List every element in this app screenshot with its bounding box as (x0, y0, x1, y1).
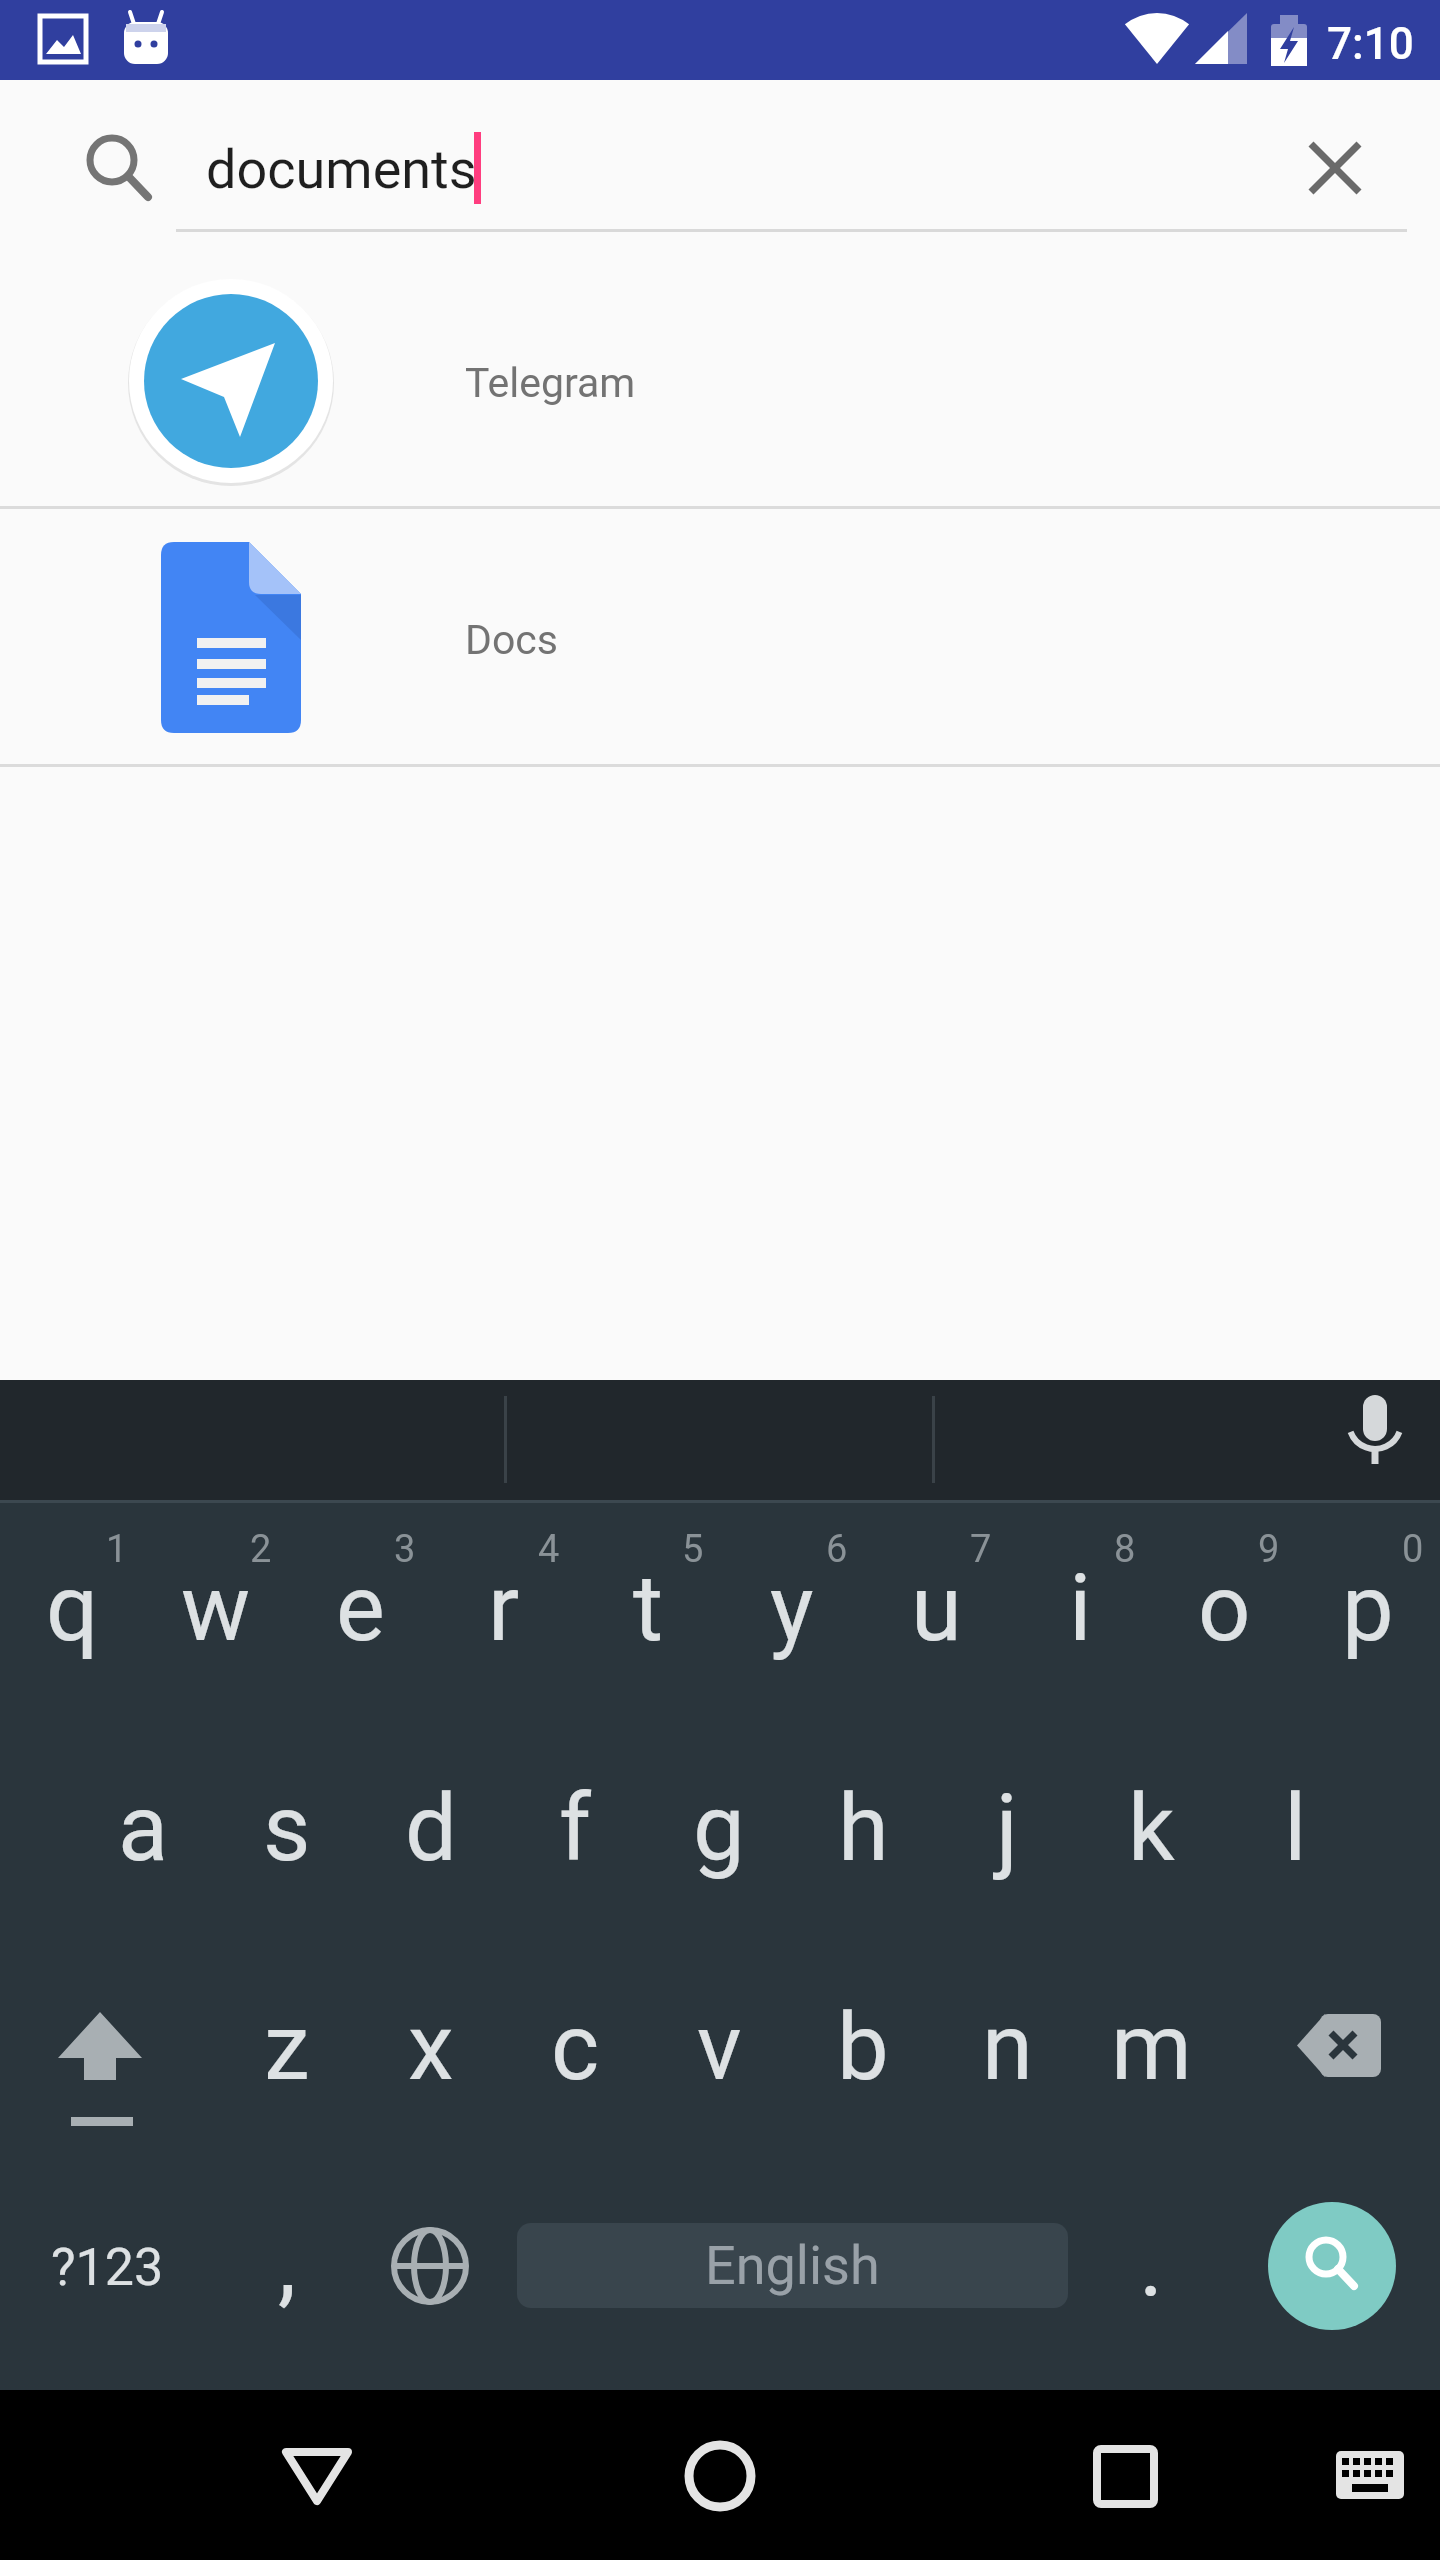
button[interactable] (1310, 2396, 1430, 2556)
staticText: c (551, 1994, 600, 2102)
button[interactable] (40, 2159, 180, 2375)
button[interactable] (640, 2396, 800, 2556)
staticText: q (46, 1555, 99, 1663)
staticText: w (181, 1555, 251, 1663)
staticText: g (693, 1775, 745, 1883)
staticText: documents (206, 138, 477, 201)
staticText: z (264, 1994, 310, 2102)
staticText: 4 (538, 1527, 560, 1572)
button[interactable]: r (432, 1501, 576, 1717)
button[interactable]: k (1079, 1721, 1223, 1937)
button[interactable] (358, 2159, 502, 2375)
button[interactable]: x (359, 1940, 503, 2156)
button[interactable]: y (720, 1501, 864, 1717)
staticText: s (263, 1775, 311, 1883)
staticText: l (1284, 1775, 1307, 1883)
button[interactable]: f (503, 1721, 647, 1937)
staticText: 7 (970, 1527, 992, 1572)
button[interactable] (1260, 1940, 1420, 2156)
button[interactable]: c (503, 1940, 647, 2156)
button[interactable]: u (864, 1501, 1008, 1717)
button[interactable]: i (1008, 1501, 1152, 1717)
staticText: 7:10 (1327, 18, 1414, 70)
staticText: e (336, 1555, 385, 1663)
button[interactable]: t (576, 1501, 720, 1717)
button[interactable]: v (647, 1940, 791, 2156)
staticText: , (278, 2210, 297, 2318)
staticText: 5 (682, 1527, 704, 1572)
staticText: English (705, 2234, 880, 2297)
button[interactable]: h (791, 1721, 935, 1937)
staticText: b (837, 1994, 889, 2102)
button[interactable]: o (1152, 1501, 1296, 1717)
staticText: h (838, 1775, 889, 1883)
button[interactable]: s (215, 1721, 359, 1937)
staticText: u (911, 1555, 962, 1663)
staticText: a (118, 1775, 169, 1883)
staticText: ?123 (51, 2237, 164, 2298)
staticText: 2 (250, 1527, 272, 1572)
staticText: d (405, 1775, 457, 1883)
staticText: 6 (826, 1527, 848, 1572)
button[interactable] (1268, 2202, 1396, 2330)
button[interactable]: e (288, 1501, 432, 1717)
staticText: v (697, 1994, 742, 2102)
staticText: j (996, 1775, 1019, 1883)
button[interactable] (0, 257, 1440, 506)
staticText: 0 (1402, 1527, 1424, 1572)
button[interactable]: b (791, 1940, 935, 2156)
button[interactable] (1045, 2396, 1205, 2556)
staticText: n (982, 1994, 1033, 2102)
button[interactable]: n (935, 1940, 1079, 2156)
button[interactable]: a (71, 1721, 215, 1937)
staticText: 3 (394, 1527, 416, 1572)
button[interactable]: d (359, 1721, 503, 1937)
staticText: Telegram (465, 359, 636, 407)
button[interactable]: m (1079, 1940, 1223, 2156)
staticText: t (633, 1555, 664, 1663)
staticText: Docs (465, 616, 558, 664)
button[interactable]: z (215, 1940, 359, 2156)
staticText: 9 (1258, 1527, 1280, 1572)
button[interactable]: l (1223, 1721, 1367, 1937)
staticText: . (1139, 2210, 1164, 2318)
button[interactable]: . (1079, 2156, 1223, 2372)
button[interactable]: w (144, 1501, 288, 1717)
button[interactable]: j (935, 1721, 1079, 1937)
button[interactable] (1290, 123, 1380, 213)
staticText: x (408, 1994, 454, 2102)
staticText: r (488, 1555, 520, 1663)
button[interactable] (20, 1940, 180, 2156)
button[interactable]: , (215, 2156, 359, 2372)
button[interactable] (237, 2396, 397, 2556)
button[interactable]: English (517, 2223, 1068, 2308)
staticText: 8 (1114, 1527, 1136, 1572)
staticText: y (770, 1555, 814, 1663)
staticText: o (1198, 1555, 1251, 1663)
staticText: m (1111, 1994, 1192, 2102)
button[interactable] (0, 509, 1440, 764)
staticText: k (1128, 1775, 1175, 1883)
button[interactable]: g (647, 1721, 791, 1937)
staticText: f (559, 1775, 591, 1883)
button[interactable] (1330, 1387, 1420, 1477)
staticText: p (1342, 1555, 1394, 1663)
staticText: 1 (106, 1527, 128, 1572)
button[interactable]: q (0, 1501, 144, 1717)
staticText: i (1069, 1555, 1092, 1663)
button[interactable]: p (1296, 1501, 1440, 1717)
